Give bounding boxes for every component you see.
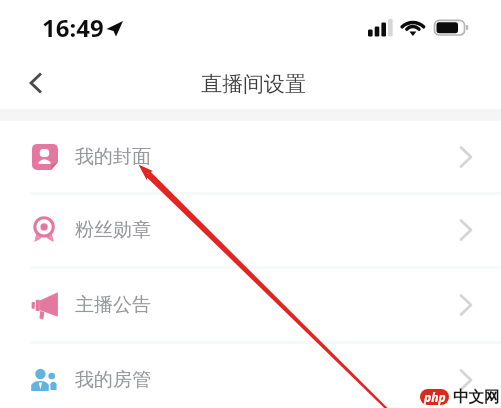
button[interactable]: 主播公告 (0, 267, 501, 342)
staticText: 主播公告 (75, 293, 151, 317)
staticText: 粉丝勋章 (75, 218, 151, 242)
button[interactable]: Back (0, 55, 56, 109)
staticText: 我的封面 (75, 145, 151, 169)
button[interactable]: 我的房管 (0, 342, 501, 408)
staticText: 16:49 (42, 11, 104, 44)
staticText: php (424, 389, 446, 405)
staticText: 直播间设置 (201, 71, 306, 97)
staticText: 中文网 (453, 387, 500, 407)
button[interactable]: 我的封面 (0, 121, 501, 193)
button[interactable]: 粉丝勋章 (0, 193, 501, 267)
staticText: 我的房管 (75, 368, 151, 392)
